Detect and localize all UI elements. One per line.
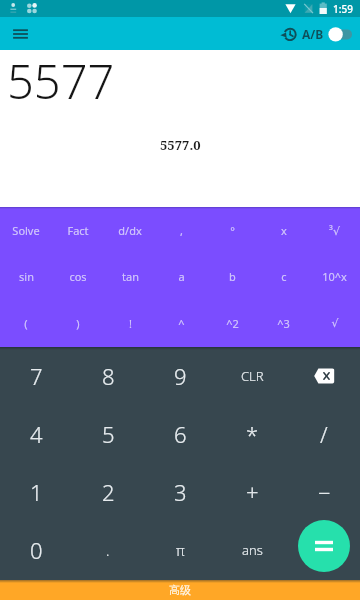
staticText: 3 [174, 477, 187, 507]
staticText: 9 [174, 361, 187, 391]
staticText: ! [129, 316, 132, 331]
button[interactable]: ! [104, 300, 156, 347]
staticText: ³√ [329, 223, 340, 238]
staticText: 2 [102, 477, 115, 507]
staticText: sin [19, 269, 34, 284]
button[interactable]: + [216, 464, 288, 522]
button[interactable]: ( [0, 300, 52, 347]
button[interactable]: tan [104, 253, 156, 300]
button[interactable]: / [288, 406, 360, 464]
staticText: √ [331, 317, 339, 330]
staticText: A/B [302, 26, 324, 42]
button[interactable]: cos [52, 253, 104, 300]
staticText: ( [24, 316, 28, 331]
staticText: 10^x [322, 269, 347, 284]
staticText: 8 [102, 361, 115, 391]
staticText: a [178, 269, 185, 284]
staticText: + [246, 477, 259, 507]
staticText: c [281, 269, 287, 284]
staticText: * [246, 419, 259, 449]
button[interactable]: 7 [0, 347, 72, 406]
staticText: d/dx [118, 223, 142, 238]
staticText: ^ [178, 316, 185, 331]
other: Backspace [311, 364, 337, 390]
button[interactable]: d/dx [104, 207, 156, 253]
button[interactable]: x [258, 207, 309, 253]
staticText: . [106, 541, 110, 560]
staticText: ans [242, 541, 263, 559]
button[interactable]: sin [0, 253, 52, 300]
button[interactable]: ^ [156, 300, 207, 347]
staticText: 高级 [169, 583, 191, 597]
staticText: 1 [30, 477, 43, 507]
staticText: 4 [30, 419, 43, 449]
staticText: 1:59 [333, 2, 353, 16]
button[interactable]: 1 [0, 464, 72, 522]
button[interactable]: ° [207, 207, 258, 253]
button[interactable]: 4 [0, 406, 72, 464]
button[interactable]: ³√ [309, 207, 360, 253]
button[interactable]: 9 [144, 347, 216, 406]
button[interactable]: A/B [302, 25, 353, 43]
staticText: 5577 [7, 49, 115, 113]
staticText: 5577.0 [160, 136, 201, 154]
button[interactable]: Menu [4, 17, 37, 50]
staticText: x [281, 223, 287, 238]
button[interactable]: 2 [72, 464, 144, 522]
staticText: ^3 [277, 316, 290, 331]
button[interactable]: π [144, 522, 216, 580]
staticText: 5 [102, 419, 115, 449]
button[interactable]: ^2 [207, 300, 258, 347]
staticText: Solve [12, 223, 40, 238]
staticText: b [229, 269, 236, 284]
button[interactable]: Solve [0, 207, 52, 253]
button[interactable]: 3 [144, 464, 216, 522]
button[interactable]: , [156, 207, 207, 253]
staticText: CLR [241, 367, 264, 385]
button[interactable]: Fact [52, 207, 104, 253]
button[interactable]: * [216, 406, 288, 464]
button[interactable]: √ [309, 300, 360, 347]
staticText: ) [76, 316, 80, 331]
button[interactable]: CLR [216, 347, 288, 406]
staticText: 6 [174, 419, 187, 449]
button[interactable]: ans [216, 522, 288, 580]
button[interactable]: History [278, 23, 300, 45]
staticText: − [318, 477, 331, 507]
button[interactable]: c [258, 253, 309, 300]
button[interactable]: 5 [72, 406, 144, 464]
button[interactable]: . [72, 522, 144, 580]
button[interactable]: 8 [72, 347, 144, 406]
staticText: / [320, 419, 328, 449]
staticText: cos [69, 269, 87, 284]
staticText: 0 [30, 535, 43, 565]
staticText: ^2 [226, 316, 239, 331]
button[interactable]: ^3 [258, 300, 309, 347]
staticText: , [180, 223, 183, 238]
button[interactable]: b [207, 253, 258, 300]
button[interactable]: Equals [298, 520, 350, 572]
button[interactable]: ) [52, 300, 104, 347]
staticText: π [176, 541, 185, 560]
button[interactable]: 10^x [309, 253, 360, 300]
button[interactable] [288, 522, 360, 580]
staticText: 7 [30, 361, 43, 391]
button[interactable]: a [156, 253, 207, 300]
button[interactable]: 0 [0, 522, 72, 580]
button[interactable]: Backspace [288, 347, 360, 406]
button[interactable]: 6 [144, 406, 216, 464]
button[interactable]: 高级 [0, 580, 360, 600]
staticText: Fact [67, 223, 89, 238]
staticText: tan [122, 269, 139, 284]
button[interactable]: − [288, 464, 360, 522]
staticText: ° [230, 223, 235, 238]
